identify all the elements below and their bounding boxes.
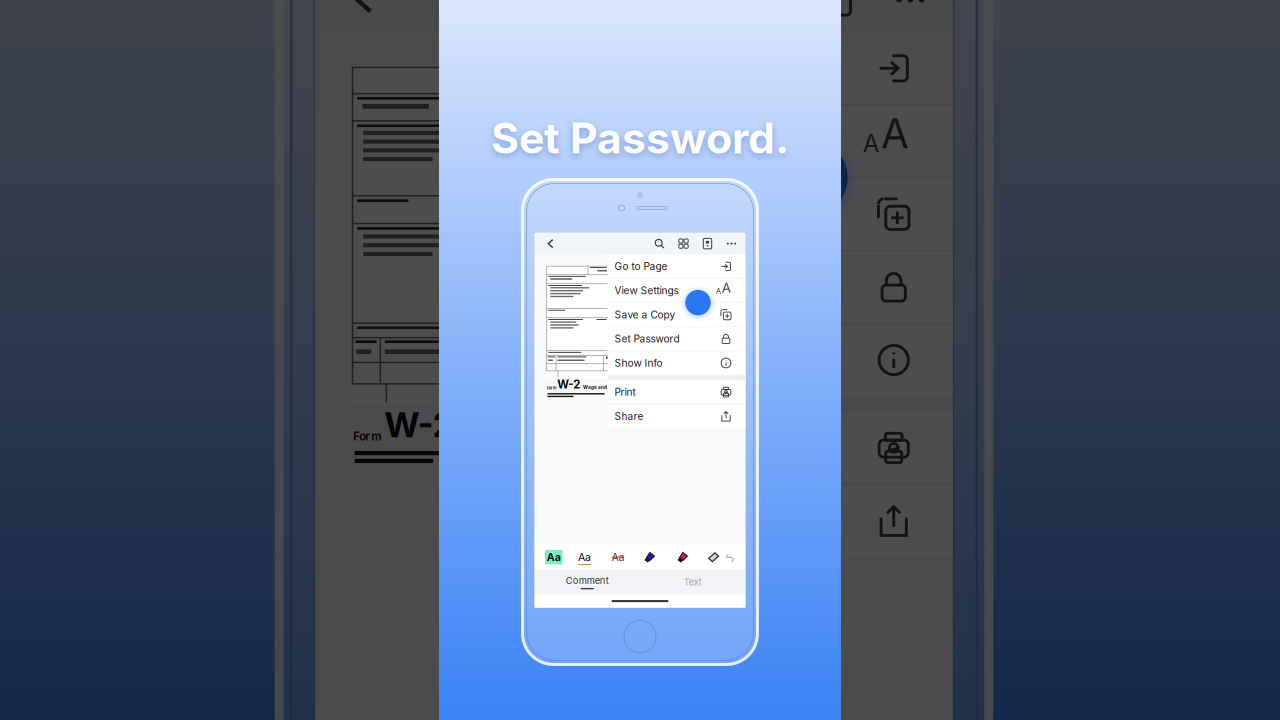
staticText: Text: [678, 569, 696, 581]
staticText: Print: [614, 386, 635, 398]
button[interactable]: Bookmarks: [690, 226, 712, 248]
button[interactable]: Comment: [534, 570, 640, 595]
button[interactable]: Aa: [578, 549, 591, 565]
button[interactable]: Search: [648, 233, 670, 255]
button[interactable]: Save a Copy: [607, 303, 745, 326]
button[interactable]: Aa: [605, 544, 618, 556]
staticText: A: [716, 286, 722, 296]
button[interactable]: Highlighter blue: [642, 551, 655, 564]
button[interactable]: Print: [601, 373, 739, 397]
button[interactable]: Thumbnails: [672, 233, 694, 255]
button[interactable]: Eraser: [701, 544, 713, 556]
staticText: Form: [547, 386, 556, 390]
button[interactable]: Back: [539, 233, 561, 255]
button[interactable]: Set Password: [601, 320, 739, 344]
button[interactable]: Print: [607, 380, 745, 404]
button[interactable]: Comment: [528, 563, 634, 588]
staticText: Comment: [566, 575, 609, 586]
button[interactable]: Search: [642, 226, 664, 248]
button[interactable]: Undo: [719, 545, 729, 555]
staticText: Wage and Tax Statement: [577, 377, 636, 383]
staticText: Aa: [578, 551, 591, 563]
staticText: View Settings: [608, 277, 672, 290]
staticText: View Settings: [614, 284, 678, 297]
button[interactable]: Highlighter pink: [669, 544, 682, 557]
button[interactable]: Share: [601, 397, 739, 421]
staticText: W-2: [551, 371, 574, 384]
button[interactable]: Thumbnails: [666, 226, 688, 248]
staticText: Show Info: [608, 350, 656, 362]
staticText: Save a Copy: [614, 309, 675, 321]
staticText: Set Password: [614, 333, 679, 345]
staticText: Go to Page: [614, 260, 667, 273]
staticText: Set Password.: [491, 112, 789, 164]
staticText: Share: [608, 403, 637, 415]
button[interactable]: View Settings: [601, 272, 739, 295]
button[interactable]: Aa: [539, 543, 557, 557]
staticText: Save a Copy: [608, 302, 669, 314]
button[interactable]: Aa: [572, 542, 585, 558]
button[interactable]: More: [720, 233, 742, 255]
staticText: Aa: [572, 544, 585, 556]
button[interactable]: Text: [640, 570, 745, 595]
staticText: Wage and Tax Statement: [583, 384, 642, 390]
button[interactable]: Bookmarks: [696, 233, 718, 255]
button[interactable]: Go to Page: [601, 248, 739, 271]
button[interactable]: Show Info: [601, 344, 739, 368]
staticText: Aa: [611, 551, 624, 563]
staticText: A: [716, 273, 728, 289]
button[interactable]: Eraser: [707, 551, 719, 563]
button[interactable]: Save a Copy: [601, 296, 739, 319]
button[interactable]: Aa: [545, 550, 563, 564]
staticText: Set Password: [608, 326, 673, 338]
button[interactable]: Aa: [611, 551, 624, 563]
button[interactable]: Highlighter pink: [675, 551, 688, 564]
button[interactable]: Go to Page: [607, 255, 745, 278]
button[interactable]: Set Password: [607, 327, 745, 351]
staticText: Comment: [560, 568, 603, 579]
staticText: Aa: [605, 544, 618, 556]
staticText: Show Info: [614, 357, 662, 369]
button[interactable]: View Settings: [607, 279, 745, 302]
button[interactable]: Text: [634, 563, 739, 588]
staticText: A: [722, 280, 734, 296]
button[interactable]: More: [714, 226, 736, 248]
staticText: Go to Page: [608, 253, 661, 266]
button[interactable]: Undo: [725, 552, 735, 562]
staticText: Aa: [547, 551, 561, 563]
button[interactable]: Highlighter blue: [636, 544, 649, 557]
staticText: Share: [614, 410, 643, 422]
button[interactable]: Show Info: [607, 351, 745, 375]
staticText: Aa: [541, 544, 555, 556]
staticText: Print: [608, 379, 629, 391]
staticText: W-2: [557, 378, 580, 391]
staticText: Text: [684, 576, 702, 588]
button[interactable]: Back: [533, 226, 555, 248]
button[interactable]: Share: [607, 404, 745, 428]
